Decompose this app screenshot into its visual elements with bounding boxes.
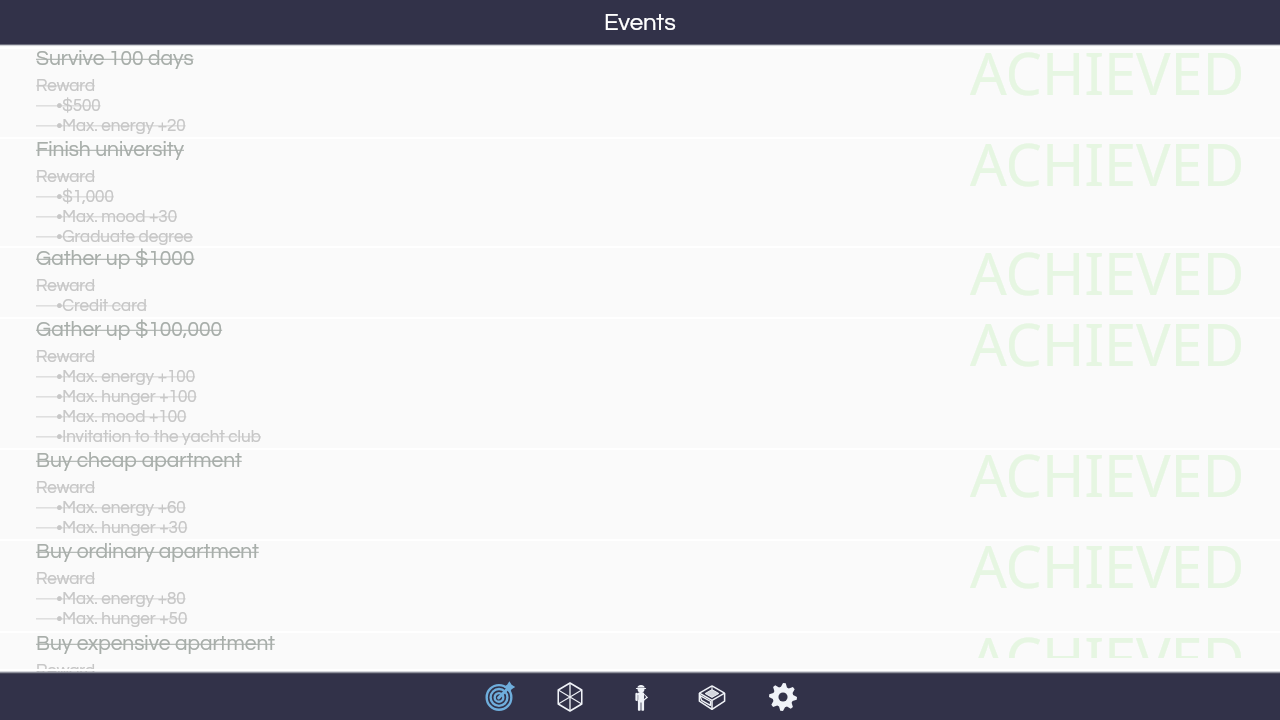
staticText: ACHIEVED [970,436,1245,514]
staticText: •Invitation to the yacht club [36,426,261,446]
staticText: •Graduate degree [36,226,193,246]
staticText: •$500 [36,95,101,115]
staticText: •Max. energy +60 [36,497,186,517]
staticText: •Max. hunger +50 [36,608,188,628]
staticText: ACHIEVED [970,305,1245,383]
staticText: ACHIEVED [970,125,1245,203]
staticText: •Max. energy +80 [36,588,186,608]
staticText: Buy expensive apartment [36,633,275,655]
staticText: •Max. hunger +100 [36,386,197,406]
button[interactable]: ACHIEVED [0,633,1280,672]
staticText: •Max. mood +30 [36,206,177,226]
button[interactable]: Goals [463,674,534,720]
staticText: ACHIEVED [970,48,1245,112]
button[interactable]: Items box [676,674,747,720]
button[interactable]: Settings [747,674,818,720]
staticText: Reward [36,660,96,672]
staticText: •Credit card [36,295,147,315]
button[interactable]: ACHIEVED [0,248,1280,317]
staticText: Reward [36,275,96,295]
staticText: Gather up $100,000 [36,319,223,341]
staticText: Survive 100 days [36,48,194,70]
staticText: Buy ordinary apartment [36,541,259,563]
button[interactable]: Character [605,674,676,720]
staticText: •Max. energy +20 [36,115,186,135]
staticText: ACHIEVED [970,619,1245,658]
staticText: Finish university [36,139,185,161]
staticText: Reward [36,75,96,95]
staticText: ACHIEVED [970,234,1245,303]
staticText: Reward [36,166,96,186]
staticText: •$1,000 [36,186,114,206]
button[interactable]: ACHIEVED [0,450,1280,539]
staticText: ACHIEVED [970,527,1245,605]
staticText: Reward [36,477,96,497]
staticText: Gather up $1000 [36,248,195,270]
button[interactable]: Inventory cube [534,674,605,720]
staticText: •Max. mood +100 [36,406,187,426]
staticText: Reward [36,346,96,366]
button[interactable]: ACHIEVED [0,48,1280,137]
button[interactable]: ACHIEVED [0,541,1280,631]
button[interactable]: ACHIEVED [0,139,1280,246]
button[interactable]: ACHIEVED [0,319,1280,448]
staticText: •Max. hunger +30 [36,517,188,537]
staticText: •Max. energy +100 [36,366,196,386]
staticText: Reward [36,568,96,588]
staticText: Buy cheap apartment [36,450,242,472]
staticText: Events [604,10,676,35]
